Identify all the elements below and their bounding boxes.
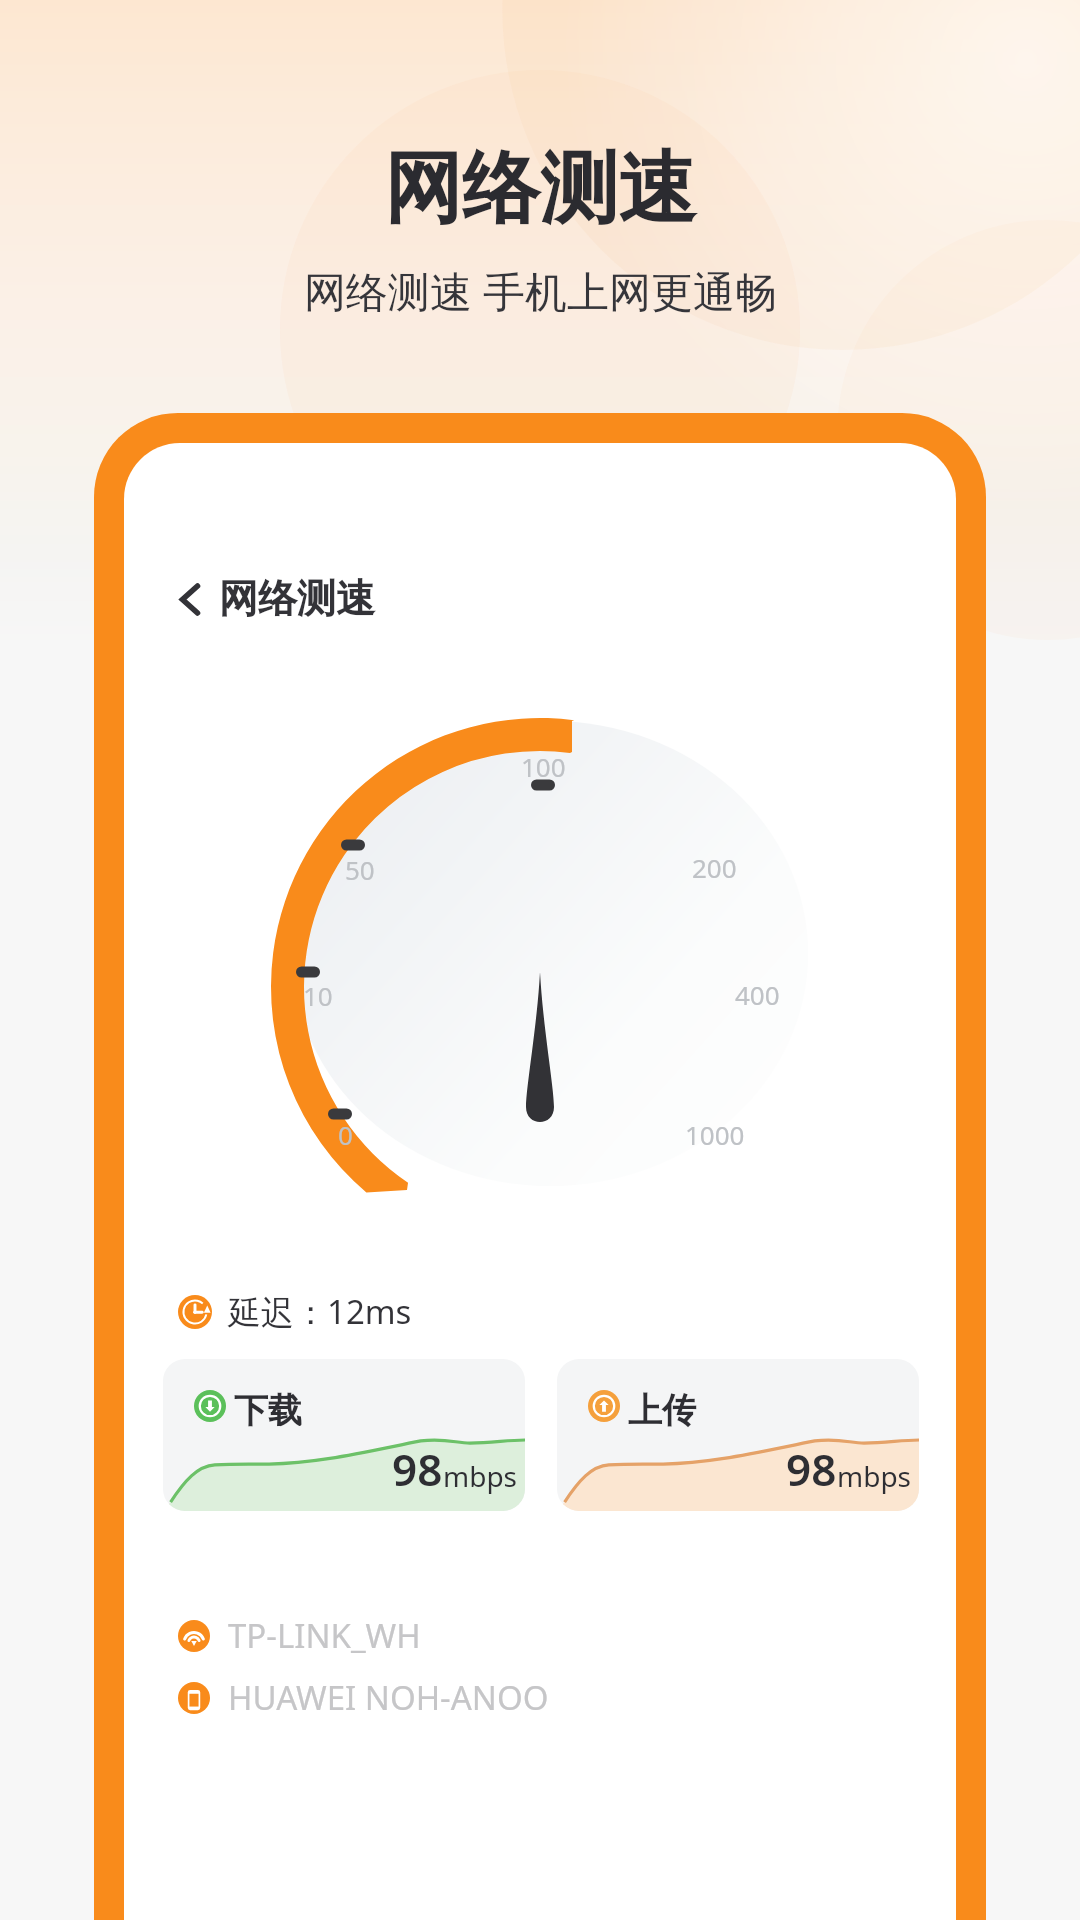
staticText: 上传 xyxy=(628,1389,696,1432)
button[interactable]: HUAWEI NOH-ANOO xyxy=(168,1669,559,1726)
staticText: 98 xyxy=(392,1439,443,1499)
staticText: 200 xyxy=(692,850,737,885)
button[interactable]: Back xyxy=(168,571,212,615)
staticText: 网络测速 xyxy=(219,574,375,623)
staticText: 下载 xyxy=(234,1389,302,1432)
staticText: 100 xyxy=(521,749,566,784)
staticText: 10 xyxy=(303,978,333,1013)
staticText: 延迟：12ms xyxy=(228,1289,412,1334)
staticText: HUAWEI NOH-ANOO xyxy=(228,1675,549,1720)
staticText: mbps xyxy=(837,1457,912,1495)
staticText: 1000 xyxy=(685,1117,745,1152)
button[interactable]: 上传 xyxy=(557,1359,919,1511)
button[interactable]: 下载 xyxy=(163,1359,525,1511)
staticText: 网络测速 xyxy=(384,140,696,238)
staticText: 网络测速 手机上网更通畅 xyxy=(304,262,777,319)
staticText: 0 xyxy=(338,1117,353,1152)
button[interactable]: 延迟：12ms xyxy=(168,1283,422,1340)
staticText: TP-LINK_WH xyxy=(228,1613,421,1658)
button[interactable]: TP-LINK_WH xyxy=(168,1607,431,1664)
staticText: 98 xyxy=(786,1439,837,1499)
staticText: 50 xyxy=(345,852,375,887)
staticText: 400 xyxy=(735,977,780,1012)
staticText: mbps xyxy=(443,1457,518,1495)
